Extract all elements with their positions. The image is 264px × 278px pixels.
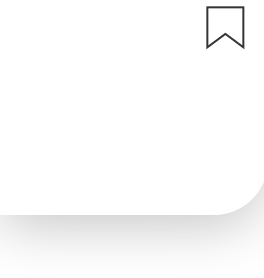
button[interactable]: Bookmark (200, 0, 250, 54)
